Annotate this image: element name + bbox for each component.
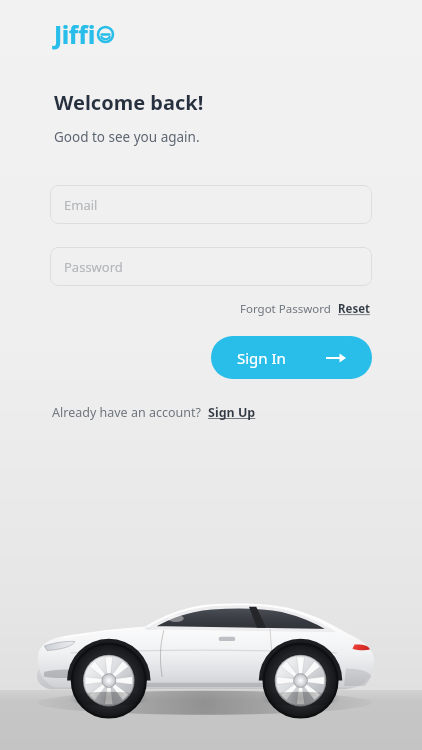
staticText: Good to see you again. [54, 128, 200, 146]
staticText: Email [64, 196, 98, 214]
button[interactable]: Password [50, 247, 372, 286]
staticText: Jiffi [54, 18, 95, 51]
staticText: Reset [338, 301, 371, 317]
staticText: Forgot Password [240, 301, 331, 317]
button[interactable]: Sign In [211, 336, 372, 379]
staticText: Password [64, 258, 123, 276]
button[interactable]: Sign Up [207, 402, 257, 423]
button[interactable]: Jiffi [52, 16, 116, 53]
staticText: Welcome back! [54, 89, 204, 116]
staticText: Already have an account? [52, 404, 201, 421]
staticText: Sign Up [208, 404, 256, 421]
button[interactable]: Email [50, 185, 372, 224]
button[interactable]: Reset [337, 299, 372, 319]
staticText: Sign In [237, 348, 286, 368]
